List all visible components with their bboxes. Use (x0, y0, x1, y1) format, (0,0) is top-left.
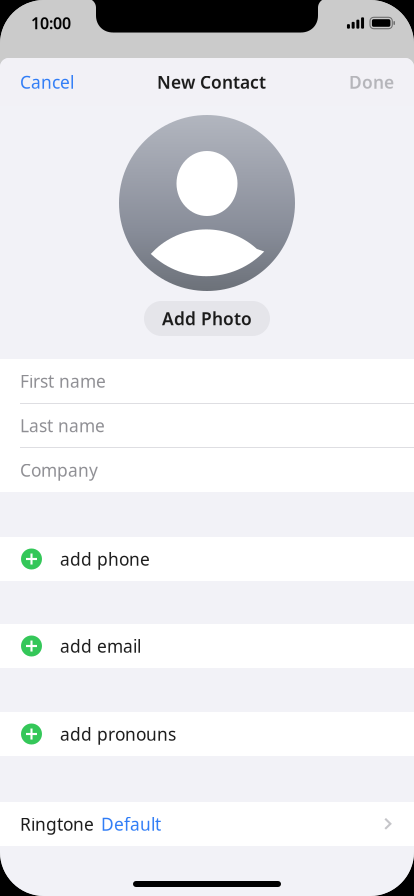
button[interactable]: add email (0, 624, 414, 668)
staticText: add pronouns (60, 722, 176, 745)
staticText: New Contact (157, 70, 266, 93)
staticText: Default (101, 812, 161, 835)
staticText: Company (20, 458, 98, 481)
button[interactable]: First name (0, 359, 414, 403)
staticText: add phone (60, 547, 150, 570)
button[interactable]: Last name (0, 404, 414, 447)
staticText: Done (349, 70, 394, 93)
staticText: Ringtone (20, 812, 94, 835)
staticText: 10:00 (31, 12, 71, 34)
button[interactable]: Ringtone (0, 802, 414, 846)
button[interactable]: Done (337, 58, 414, 106)
button[interactable]: Cancel (0, 58, 86, 106)
button[interactable]: add phone (0, 537, 414, 581)
staticText: First name (20, 369, 106, 392)
staticText: Add Photo (162, 307, 252, 330)
button[interactable]: Add Photo (144, 301, 270, 336)
button[interactable]: add pronouns (0, 712, 414, 756)
staticText: Cancel (20, 70, 74, 93)
button[interactable]: Company (0, 448, 414, 492)
staticText: add email (60, 634, 141, 657)
staticText: Last name (20, 414, 105, 437)
